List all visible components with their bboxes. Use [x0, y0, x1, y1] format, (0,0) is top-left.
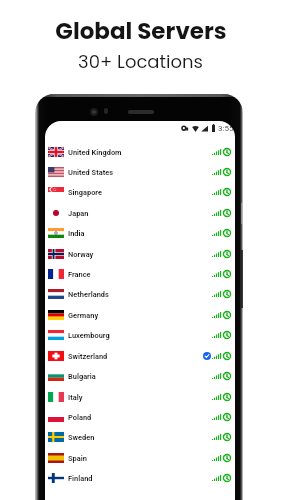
button[interactable]: Finland — [45, 468, 235, 488]
button[interactable]: Poland — [45, 407, 235, 427]
staticText: Norway — [68, 250, 94, 259]
button[interactable]: Germany — [45, 305, 235, 325]
button[interactable]: Bulgaria — [45, 366, 235, 386]
button[interactable]: United Kingdom — [45, 142, 235, 162]
staticText: United States — [68, 168, 114, 177]
staticText: India — [68, 229, 85, 238]
staticText: Bulgaria — [68, 372, 96, 381]
button[interactable]: Netherlands — [45, 284, 235, 304]
staticText: Spain — [68, 454, 87, 463]
staticText: Finland — [68, 474, 93, 483]
button[interactable]: United States — [45, 162, 235, 182]
staticText: Global Servers — [55, 15, 227, 47]
button[interactable]: Singapore — [45, 182, 235, 202]
button[interactable]: Sweden — [45, 427, 235, 447]
button[interactable]: India — [45, 223, 235, 243]
staticText: Germany — [68, 311, 99, 320]
staticText: Poland — [68, 413, 92, 422]
staticText: Luxembourg — [68, 331, 110, 340]
button[interactable]: Spain — [45, 448, 235, 468]
staticText: France — [68, 270, 91, 279]
staticText: Japan — [68, 209, 89, 218]
staticText: Italy — [68, 393, 83, 402]
staticText: Switzerland — [68, 352, 108, 361]
button[interactable]: Switzerland — [45, 346, 235, 366]
staticText: 3:55 — [218, 124, 234, 133]
staticText: Netherlands — [68, 290, 109, 299]
other: Selected — [203, 352, 211, 360]
button[interactable]: Norway — [45, 244, 235, 264]
button[interactable]: France — [45, 264, 235, 284]
button[interactable]: Luxembourg — [45, 325, 235, 345]
staticText: Singapore — [68, 188, 102, 197]
staticText: Sweden — [68, 433, 95, 442]
button[interactable]: Japan — [45, 203, 235, 223]
button[interactable]: Italy — [45, 387, 235, 407]
staticText: 30+ Locations — [78, 49, 203, 74]
staticText: United Kingdom — [68, 148, 122, 157]
